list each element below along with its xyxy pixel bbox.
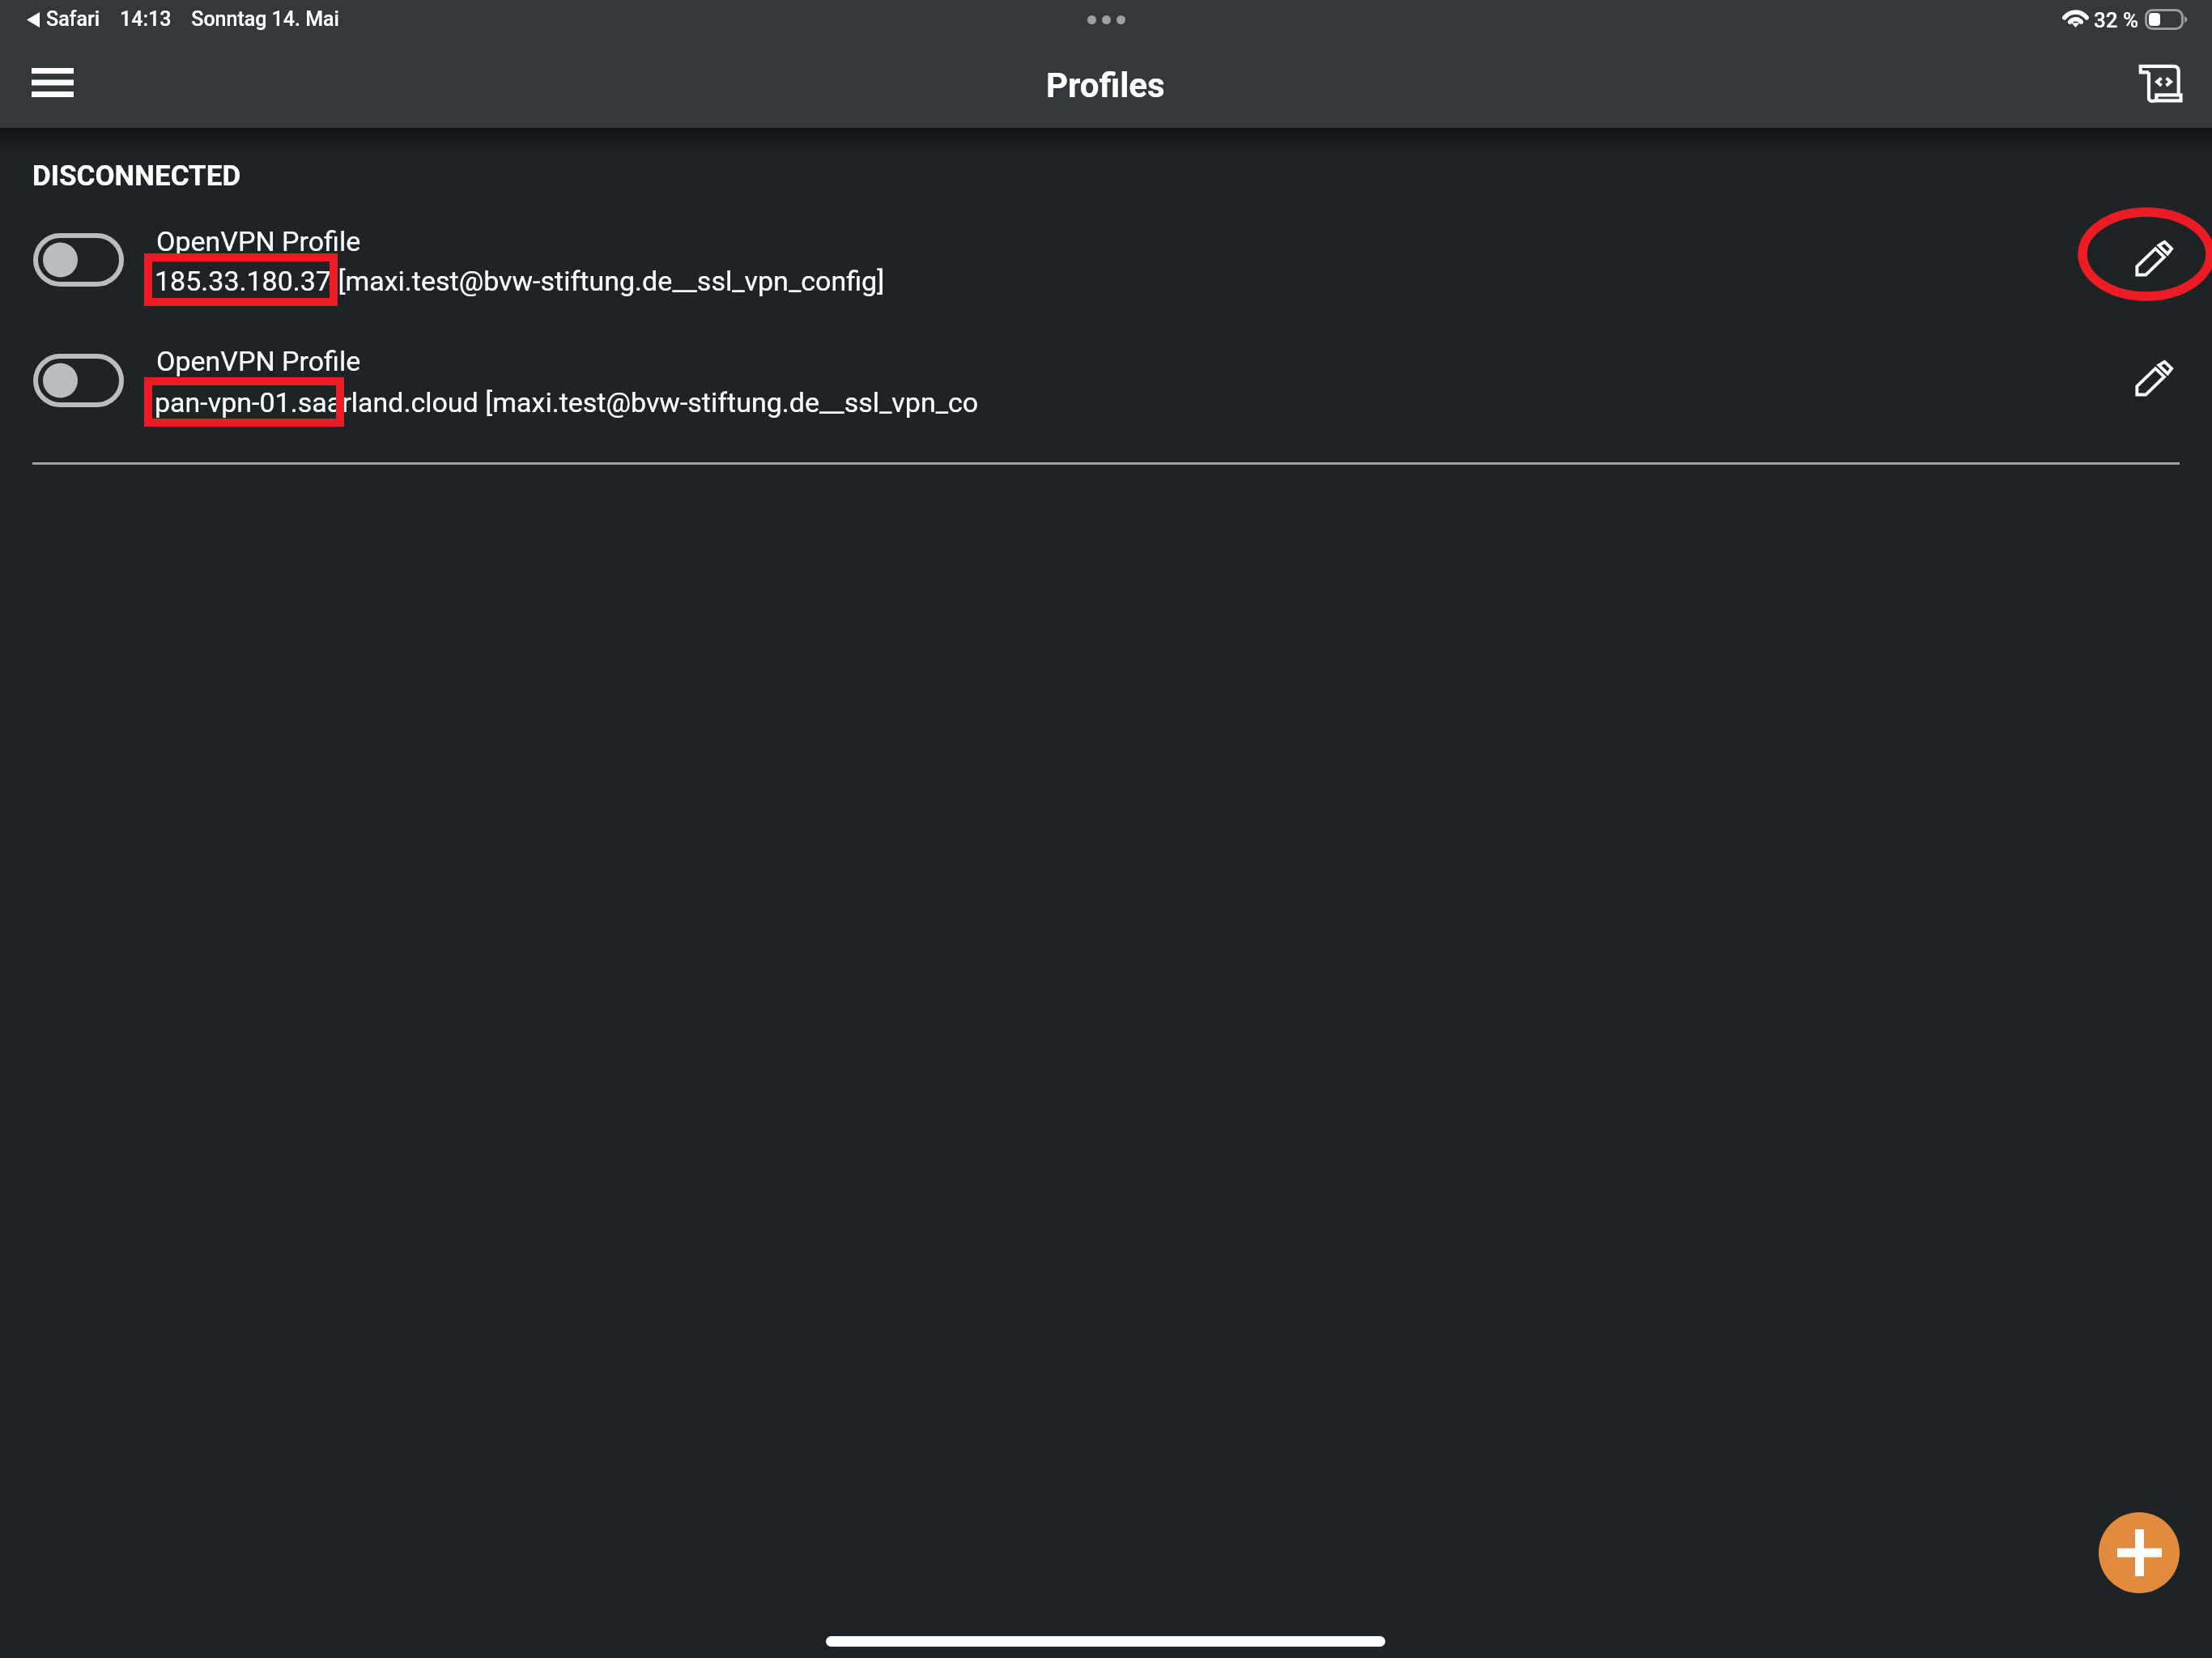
button[interactable]: Add profile <box>2099 1512 2180 1593</box>
staticText: 185.33.180.37 [maxi.test@bvw-stiftung.de… <box>155 265 2212 297</box>
staticText: DISCONNECTED <box>32 159 241 193</box>
staticText: OpenVPN Profile <box>156 345 361 377</box>
button[interactable]: Edit profile <box>2123 346 2184 410</box>
button[interactable]: Open navigation menu <box>13 47 92 118</box>
button[interactable]: Enable VPN profile <box>33 354 124 407</box>
staticText: 32 % <box>2094 8 2139 32</box>
button[interactable]: Enable VPN profile <box>33 233 124 287</box>
staticText: pan-vpn-01.saarland.cloud [maxi.test@bvw… <box>155 386 2212 419</box>
staticText: Profiles <box>1046 66 1165 105</box>
button[interactable]: Edit profile <box>2123 227 2184 290</box>
staticText: OpenVPN Profile <box>156 225 361 257</box>
button[interactable]: Import profile from file <box>2121 45 2199 121</box>
staticText: Safari 14:13 Sonntag 14. Mai <box>46 7 339 31</box>
